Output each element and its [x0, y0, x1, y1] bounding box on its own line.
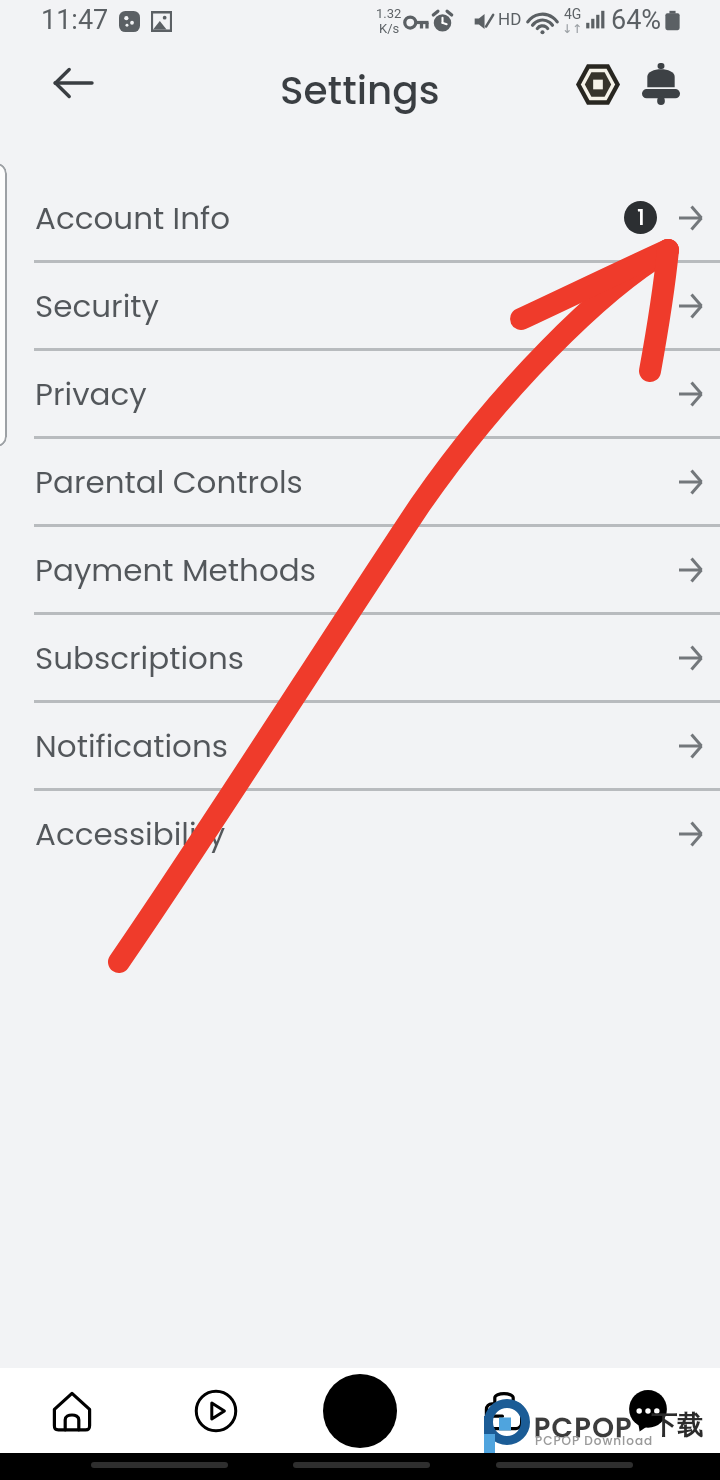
staticText: Settings — [280, 63, 440, 118]
button[interactable]: Notifications — [630, 53, 692, 115]
staticText: Accessibility — [35, 812, 226, 855]
staticText: Notifications — [35, 724, 228, 767]
staticText: Payment Methods — [35, 548, 316, 591]
button[interactable]: Account Info — [0, 175, 720, 260]
staticText: Privacy — [35, 372, 147, 415]
staticText: K/s — [379, 21, 400, 36]
staticText: PCPOP — [534, 1409, 634, 1447]
button[interactable]: Accessibility — [0, 791, 720, 876]
staticText: PCPOP Download — [535, 1432, 654, 1449]
staticText: Parental Controls — [35, 460, 303, 503]
staticText: ↓↑ — [562, 22, 583, 36]
button[interactable]: Payment Methods — [0, 527, 720, 612]
staticText: Security — [35, 284, 159, 327]
button[interactable]: Home — [0, 1368, 144, 1453]
staticText: 1.32 — [376, 6, 402, 21]
button[interactable]: Subscriptions — [0, 615, 720, 700]
button[interactable]: Back — [36, 46, 110, 120]
staticText: Subscriptions — [35, 636, 244, 679]
button[interactable]: Parental Controls — [0, 439, 720, 524]
button[interactable]: Privacy — [0, 351, 720, 436]
button[interactable]: Discover — [144, 1368, 288, 1453]
staticText: 下载 — [651, 1409, 703, 1442]
button[interactable]: Robux balance — [567, 53, 629, 115]
staticText: HD — [498, 9, 522, 29]
button[interactable]: Avatar Shop — [432, 1368, 576, 1453]
button[interactable]: Notifications — [0, 703, 720, 788]
staticText: 64% — [611, 4, 662, 36]
staticText: 11:47 — [41, 4, 109, 36]
staticText: 1 — [637, 202, 645, 233]
button[interactable]: Security — [0, 263, 720, 348]
staticText: Account Info — [35, 196, 231, 239]
button[interactable]: Chat — [576, 1368, 720, 1453]
staticText: 4G — [564, 6, 582, 22]
button[interactable]: Create — [288, 1368, 432, 1453]
